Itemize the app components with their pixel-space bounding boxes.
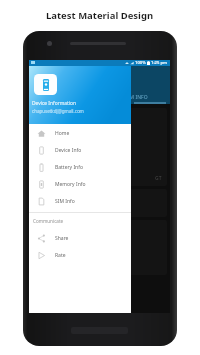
staticText: Rate — [55, 252, 66, 259]
staticText: Battery Info — [55, 164, 83, 171]
staticText: Home — [55, 130, 70, 137]
staticText: Device Information — [32, 100, 77, 107]
staticText: Device Info — [37, 73, 75, 83]
staticText: SIM INFO — [125, 94, 148, 101]
button[interactable]: Battery Info — [29, 159, 131, 176]
button[interactable]: Device Info — [29, 142, 131, 159]
staticText: Latest Material Design — [46, 9, 154, 22]
staticText: Share — [55, 235, 69, 242]
staticText: 100% — [135, 60, 146, 66]
staticText: Device Info — [55, 147, 82, 154]
staticText: SIM Info — [55, 198, 75, 205]
button[interactable]: Share — [29, 230, 131, 247]
button[interactable]: Memory Info — [29, 176, 131, 193]
staticText: Memory Info — [55, 181, 86, 188]
button[interactable]: Home — [29, 125, 131, 142]
staticText: 1:25 pm — [151, 60, 167, 66]
button[interactable]: Rate — [29, 247, 131, 264]
staticText: GT — [155, 175, 162, 182]
button[interactable]: SIM Info — [29, 193, 131, 210]
staticText: chapusetkdj@gmail.com — [32, 108, 84, 114]
staticText: Communicate — [33, 218, 64, 224]
